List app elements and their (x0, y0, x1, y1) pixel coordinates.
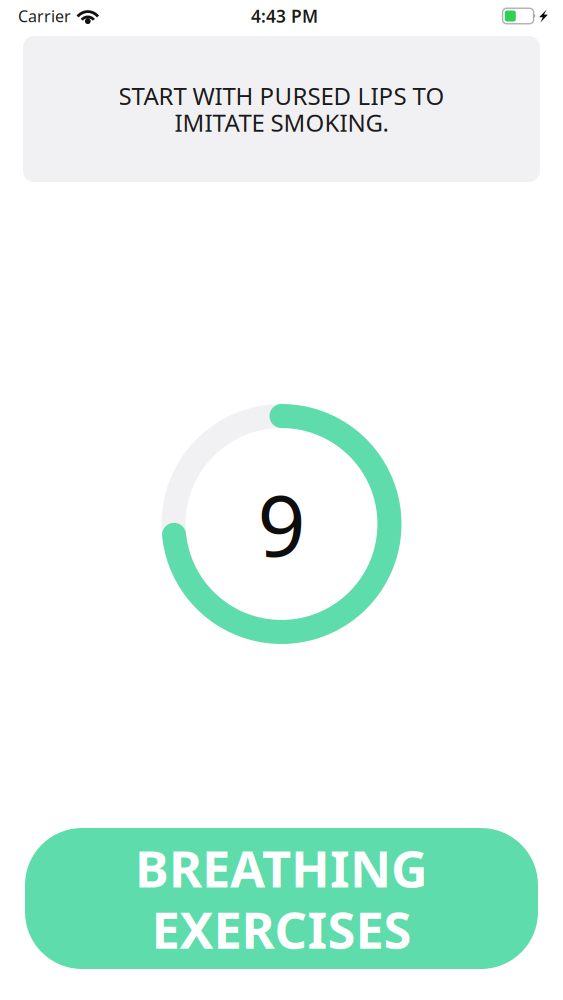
staticText: 9 (257, 468, 305, 580)
staticText: BREATHING (135, 834, 428, 901)
staticText: Carrier (18, 5, 71, 27)
staticText: EXERCISES (151, 895, 411, 963)
staticText: START WITH PURSED LIPS TO (118, 80, 444, 111)
button[interactable]: BREATHING (25, 828, 538, 969)
staticText: IMITATE SMOKING. (174, 106, 388, 138)
staticText: 4:43 PM (251, 4, 318, 27)
